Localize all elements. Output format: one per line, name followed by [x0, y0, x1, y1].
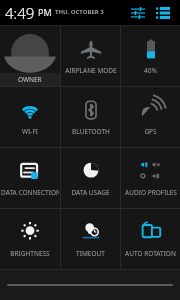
button[interactable]: Close quick settings [0, 270, 180, 300]
staticText: THU, OCTOBER 3 [55, 8, 104, 16]
button[interactable]: BLUETOOTH [61, 87, 120, 147]
button[interactable]: WI-FI [0, 87, 60, 147]
staticText: DATA USAGE [71, 188, 110, 197]
button[interactable]: 40% [121, 26, 180, 86]
button[interactable]: AIRPLANE MODE [61, 26, 120, 86]
button[interactable]: DATA USAGE [61, 148, 120, 208]
staticText: BLUETOOTH [72, 127, 110, 136]
button[interactable]: Settings [127, 2, 149, 24]
staticText: AIRPLANE MODE [65, 66, 117, 75]
staticText: TIMEOUT [76, 249, 105, 258]
staticText: AUDIO PROFILES [125, 188, 177, 197]
staticText: BRIGHTNESS [10, 249, 50, 258]
staticText: PM [38, 6, 52, 18]
button[interactable]: DATA CONNECTION [0, 148, 60, 208]
button[interactable]: TIMEOUT [61, 209, 120, 269]
staticText: 40% [144, 66, 157, 75]
staticText: OWNER [18, 75, 42, 84]
button[interactable]: AUTO ROTATION [121, 209, 180, 269]
button[interactable]: BRIGHTNESS [0, 209, 60, 269]
staticText: 4:49 [5, 3, 35, 23]
staticText: WI-FI [22, 127, 38, 136]
staticText: GPS [144, 127, 157, 136]
staticText: AUTO ROTATION [125, 249, 176, 258]
button[interactable]: OWNER [0, 26, 60, 86]
staticText: DATA CONNECTION [1, 188, 59, 197]
button[interactable]: GPS [121, 87, 180, 147]
button[interactable]: AUDIO PROFILES [121, 148, 180, 208]
button[interactable]: Notifications list [152, 2, 174, 24]
